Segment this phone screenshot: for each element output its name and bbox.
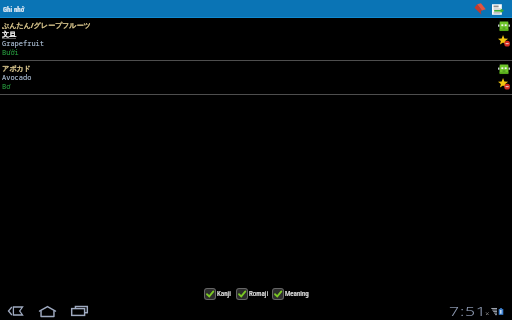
button[interactable]: Erase [471, 0, 489, 18]
button[interactable]: Meaning [272, 288, 309, 300]
button[interactable]: Speak [498, 20, 510, 32]
button[interactable]: Export [489, 0, 507, 18]
staticText: Bưởi [2, 48, 19, 57]
staticText: 7:51 [449, 302, 487, 320]
button[interactable]: Remove favourite [498, 35, 510, 47]
staticText: Ghi nhớ [3, 6, 25, 14]
staticText: Meaning [285, 290, 309, 298]
button[interactable]: Home [36, 303, 58, 319]
button[interactable]: Back [5, 303, 26, 319]
staticText: Avocado [2, 73, 32, 82]
staticText: Kanji [217, 290, 231, 298]
staticText: 文旦 [2, 30, 16, 39]
button[interactable]: Kanji [204, 288, 231, 300]
staticText: アボカド [2, 64, 31, 73]
button[interactable]: Recents [68, 303, 90, 319]
button[interactable]: Remove favourite [498, 78, 510, 90]
button[interactable]: Romaji [236, 288, 269, 300]
button[interactable]: Speak [498, 63, 510, 75]
staticText: Romaji [249, 290, 269, 298]
staticText: Grapefruit [2, 39, 44, 48]
staticText: Bơ [2, 82, 11, 91]
button[interactable]: ぶんたん/グレープフルーツ [0, 18, 512, 61]
staticText: ぶんたん/グレープフルーツ [2, 21, 91, 30]
button[interactable]: アボカド [0, 61, 512, 95]
